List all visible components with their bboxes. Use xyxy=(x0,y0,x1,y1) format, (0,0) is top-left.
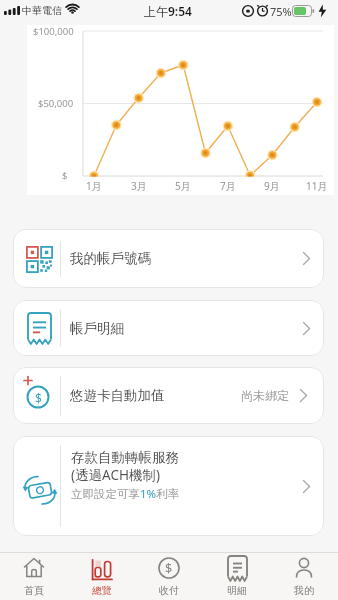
staticText: 75% xyxy=(270,4,292,19)
staticText: 3月 xyxy=(131,179,147,193)
staticText: 上午9:54 xyxy=(144,3,192,19)
staticText: 我的 xyxy=(294,584,314,597)
staticText: 首頁 xyxy=(24,584,44,597)
staticText: 1月 xyxy=(86,179,102,193)
button[interactable]: $ xyxy=(13,367,324,424)
staticText: 明細 xyxy=(227,584,247,597)
button[interactable]: 明細 xyxy=(203,552,271,600)
staticText: 5月 xyxy=(175,179,191,193)
staticText: $100,000 xyxy=(33,25,74,38)
staticText: (透過ACH機制) xyxy=(71,466,160,484)
staticText: 我的帳戶號碼 xyxy=(70,250,151,267)
staticText: $ xyxy=(62,169,68,182)
staticText: $ xyxy=(165,560,173,577)
staticText: $ xyxy=(35,390,42,406)
button[interactable]: $ xyxy=(135,552,203,600)
button[interactable]: 我的 xyxy=(270,552,338,600)
staticText: 9月 xyxy=(264,179,280,193)
staticText: 收付 xyxy=(159,584,179,597)
staticText: $50,000 xyxy=(38,97,74,110)
staticText: 中華電信 xyxy=(22,4,62,17)
staticText: 7月 xyxy=(220,179,236,193)
button[interactable]: 存款自動轉帳服務 xyxy=(13,436,324,536)
staticText: 帳戶明細 xyxy=(70,320,124,337)
staticText: 悠遊卡自動加值 xyxy=(70,387,165,404)
staticText: 存款自動轉帳服務 xyxy=(71,449,179,466)
staticText: 立即設定可享1%利率 xyxy=(71,486,180,502)
staticText: 11月 xyxy=(306,179,328,193)
button[interactable]: 首頁 xyxy=(0,552,68,600)
staticText: 總覽 xyxy=(92,584,112,597)
staticText: 尚未綁定 xyxy=(241,388,289,403)
button[interactable]: 總覽 xyxy=(68,552,136,600)
button[interactable]: 我的帳戶號碼 xyxy=(13,229,324,288)
button[interactable]: 帳戶明細 xyxy=(13,300,324,356)
